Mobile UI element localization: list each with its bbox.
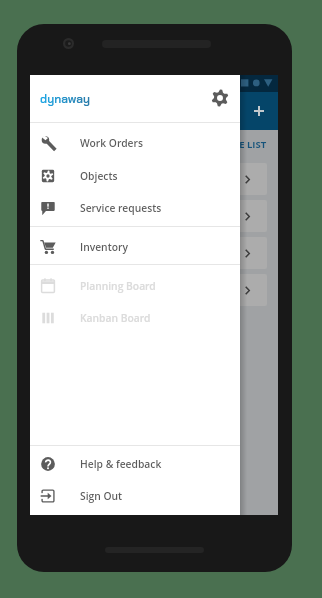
button[interactable]: Kanban Board — [30, 302, 240, 334]
staticText: Kanban Board — [80, 311, 151, 325]
staticText: Planning Board — [80, 279, 156, 293]
staticText: SERVICE LIST — [207, 138, 267, 151]
staticText: Work Orders — [80, 136, 143, 150]
staticText: Service requests — [80, 201, 162, 215]
button[interactable] — [38, 200, 267, 232]
button[interactable]: Planning Board — [30, 270, 240, 302]
button[interactable]: Work Orders — [30, 127, 240, 159]
button[interactable]: Service requests — [30, 192, 240, 224]
button[interactable]: Sign Out — [30, 480, 240, 512]
button[interactable]: Settings — [211, 89, 229, 107]
staticText: dynaway — [40, 91, 91, 107]
button[interactable]: Objects — [30, 160, 240, 192]
staticText: Objects — [80, 169, 118, 183]
staticText: Inventory — [80, 240, 128, 254]
button[interactable] — [38, 274, 267, 306]
button[interactable]: Add work order — [248, 100, 270, 122]
button[interactable]: dynaway — [30, 75, 240, 121]
staticText: Sign Out — [80, 489, 123, 503]
button[interactable] — [38, 237, 267, 269]
button[interactable]: Help & feedback — [30, 448, 240, 480]
button[interactable] — [38, 163, 267, 195]
staticText: Help & feedback — [80, 457, 162, 471]
button[interactable]: Inventory — [30, 231, 240, 263]
